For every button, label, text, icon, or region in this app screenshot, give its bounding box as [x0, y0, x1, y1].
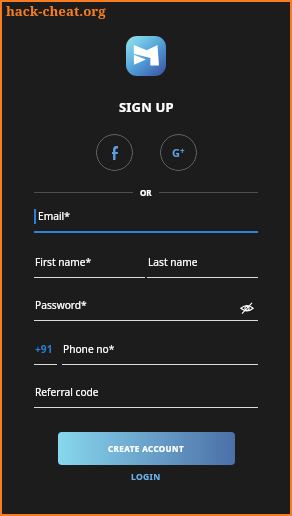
staticText: SIGN UP	[119, 98, 174, 116]
button[interactable]: Sign up with Facebook	[96, 134, 133, 171]
button[interactable]: LOGIN	[121, 466, 171, 488]
staticText: First name*	[35, 255, 92, 269]
staticText: CREATE ACCOUNT	[108, 443, 185, 454]
staticText: Last name	[148, 255, 198, 269]
staticText: G	[172, 145, 180, 160]
button[interactable]: Sign up with Google	[160, 134, 197, 171]
staticText: +	[180, 145, 185, 156]
staticText: LOGIN	[131, 471, 161, 483]
staticText: Email*	[38, 209, 70, 223]
staticText: +91	[35, 342, 53, 356]
staticText: OR	[140, 187, 152, 198]
staticText: Password*	[35, 298, 87, 312]
button[interactable]: CREATE ACCOUNT	[58, 432, 235, 465]
staticText: Phone no*	[63, 342, 115, 356]
staticText: Referral code	[35, 385, 99, 399]
staticText: hack-cheat.org	[6, 2, 106, 20]
button[interactable]: Show password	[240, 301, 254, 315]
